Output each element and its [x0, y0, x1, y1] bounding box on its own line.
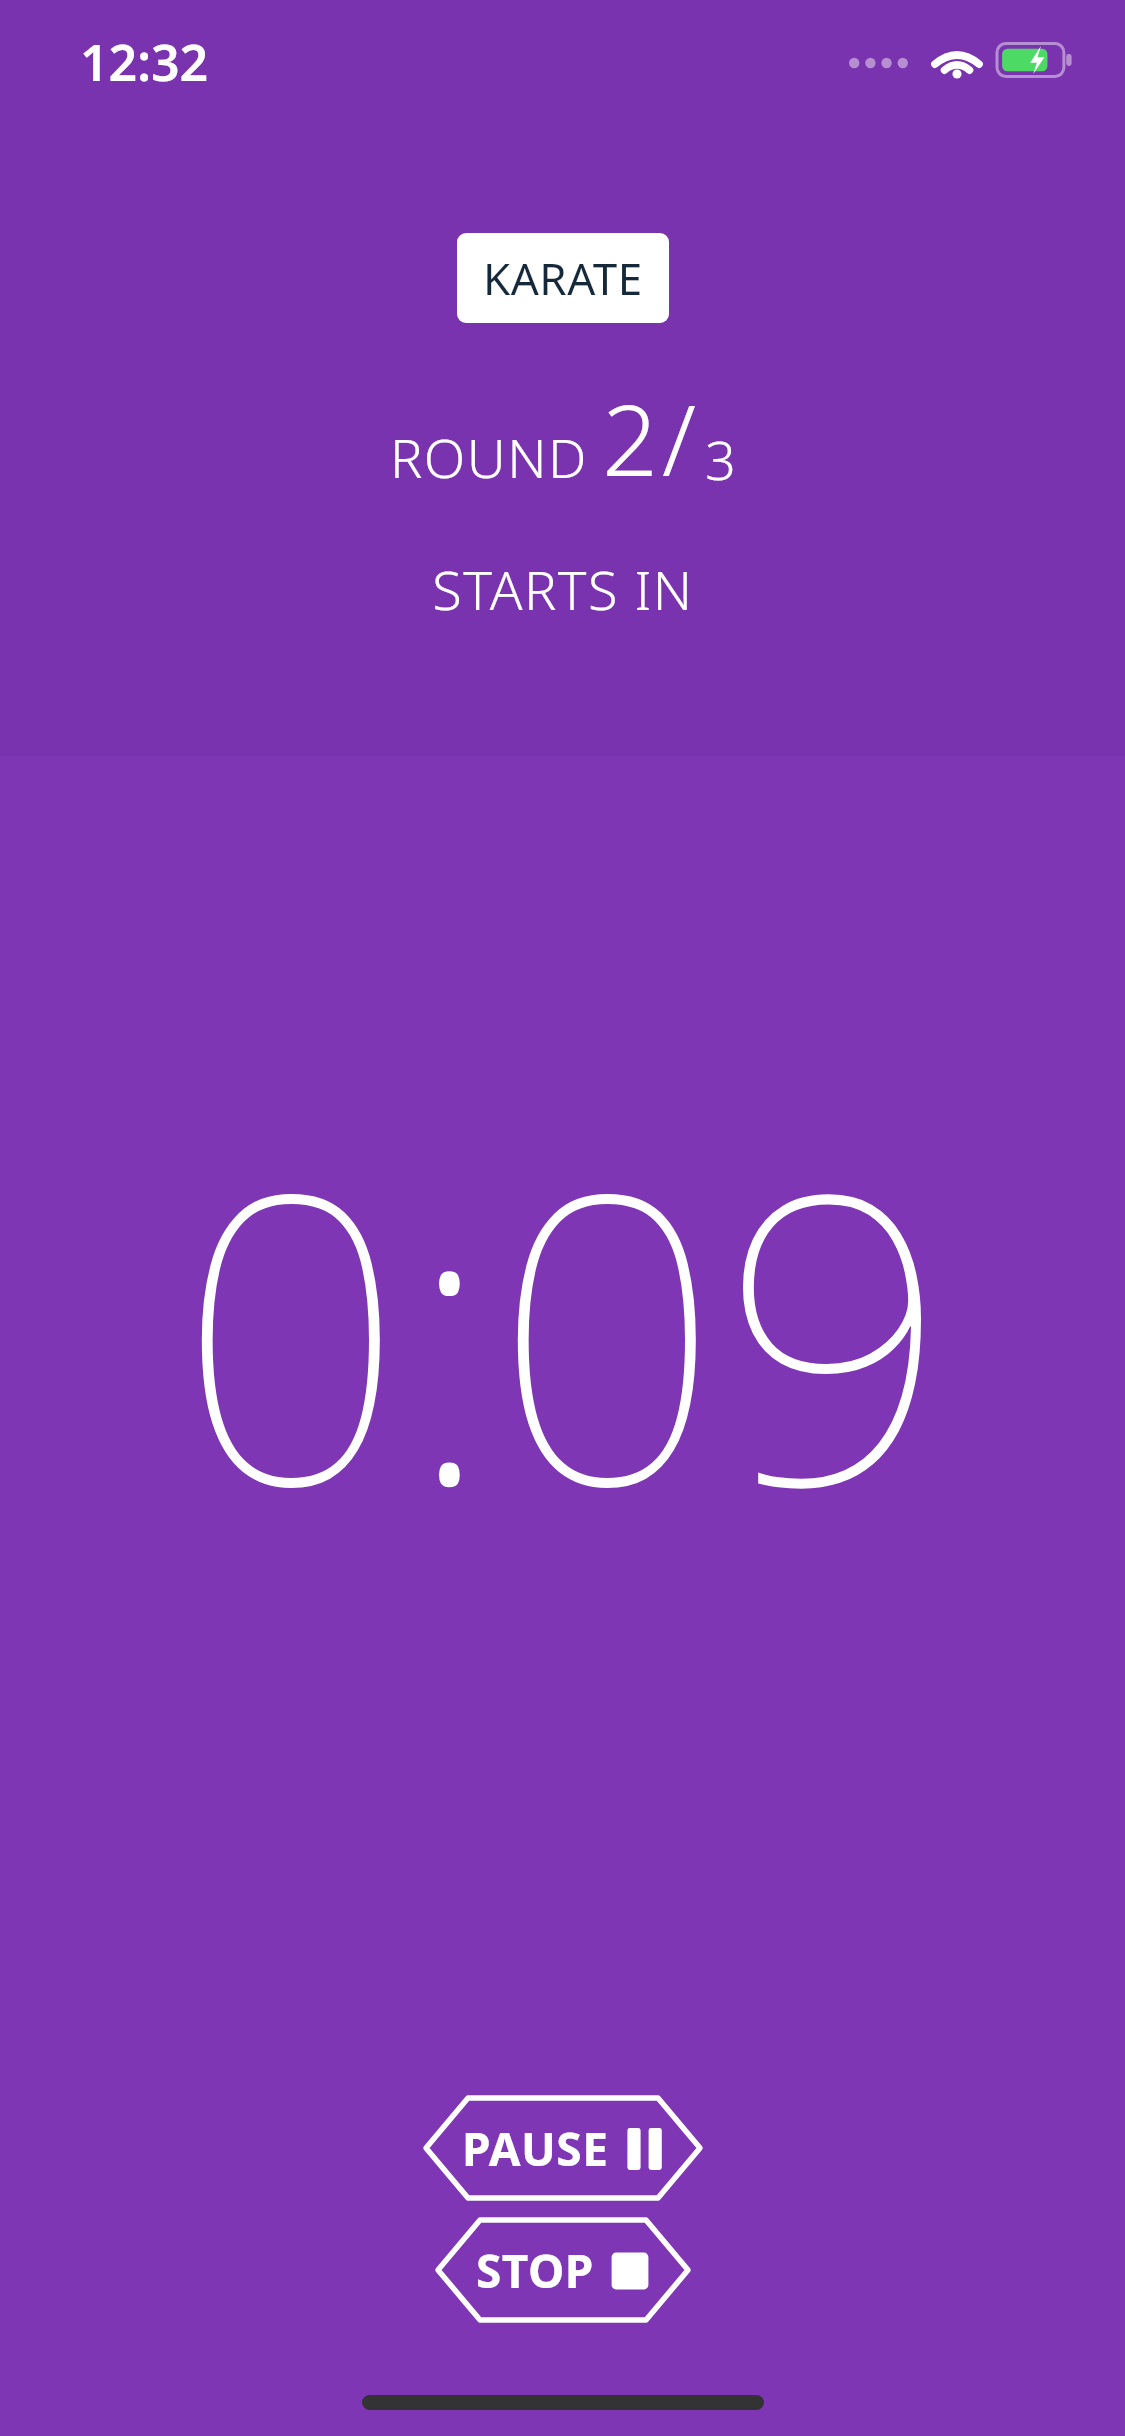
staticText: 0:09 — [177, 1056, 949, 1601]
staticText: / — [662, 371, 697, 504]
staticText: 2 — [602, 371, 658, 504]
other: STOP — [610, 2250, 650, 2292]
staticText: 3 — [705, 422, 736, 496]
other: PAUSE — [625, 2128, 665, 2170]
staticText: STOP — [476, 2239, 594, 2302]
staticText: 12:32 — [80, 28, 209, 96]
staticText: STARTS IN — [432, 552, 694, 626]
button[interactable]: STOP — [438, 2220, 688, 2320]
staticText: KARATE — [483, 248, 643, 308]
staticText: PAUSE — [462, 2117, 609, 2180]
staticText: ROUND — [390, 420, 588, 494]
button[interactable]: KARATE — [457, 233, 669, 323]
button[interactable]: PAUSE — [426, 2098, 700, 2198]
